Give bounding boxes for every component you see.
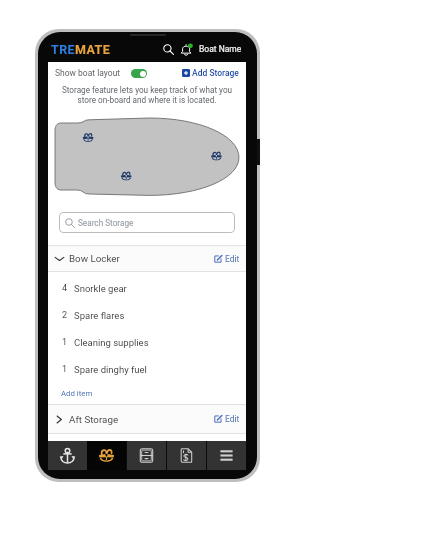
button[interactable]: Notifications bbox=[178, 41, 195, 58]
staticText: 1 bbox=[62, 364, 68, 375]
button[interactable]: Lockers bbox=[126, 441, 166, 470]
button[interactable]: Add Storage bbox=[182, 68, 239, 78]
button[interactable]: Edit bbox=[214, 254, 240, 264]
staticText: 4 bbox=[62, 283, 68, 294]
staticText: Add Storage bbox=[192, 68, 239, 78]
button[interactable]: TRE bbox=[51, 42, 111, 57]
button[interactable]: Menu bbox=[206, 441, 246, 470]
button[interactable]: 2 bbox=[48, 302, 246, 329]
button[interactable]: Search bbox=[160, 41, 177, 58]
button[interactable]: Show boat layout bbox=[55, 68, 147, 78]
button[interactable]: 4 bbox=[48, 275, 246, 302]
staticText: Storage feature lets you keep track of w… bbox=[58, 85, 236, 105]
button[interactable]: Documents bbox=[166, 441, 206, 470]
staticText: MATE bbox=[75, 42, 111, 57]
staticText: Bow Locker bbox=[69, 253, 120, 264]
button[interactable]: Storage bbox=[87, 441, 126, 470]
staticText: Aft Storage bbox=[69, 414, 119, 425]
staticText: Cleaning supplies bbox=[74, 337, 149, 348]
button[interactable]: Bow Locker bbox=[48, 246, 246, 271]
button[interactable]: Add item bbox=[48, 383, 246, 404]
staticText: Spare dinghy fuel bbox=[74, 364, 147, 375]
staticText: Search Storage bbox=[78, 218, 134, 228]
staticText: 2 bbox=[62, 310, 68, 321]
staticText: Spare flares bbox=[74, 310, 125, 321]
button[interactable]: Boat Name bbox=[199, 44, 242, 54]
button[interactable]: 1 bbox=[48, 329, 246, 356]
button[interactable]: Edit bbox=[214, 414, 240, 424]
staticText: Add item bbox=[61, 389, 93, 398]
staticText: Edit bbox=[225, 414, 240, 424]
staticText: Edit bbox=[225, 254, 240, 264]
staticText: Show boat layout bbox=[55, 68, 121, 78]
staticText: TRE bbox=[51, 42, 75, 57]
button[interactable]: Aft Storage bbox=[48, 405, 246, 433]
staticText: 1 bbox=[62, 337, 68, 348]
button[interactable]: Anchor bbox=[48, 441, 87, 470]
button[interactable]: Search Storage bbox=[59, 212, 235, 233]
staticText: Snorkle gear bbox=[74, 283, 127, 294]
button[interactable]: 1 bbox=[48, 356, 246, 383]
